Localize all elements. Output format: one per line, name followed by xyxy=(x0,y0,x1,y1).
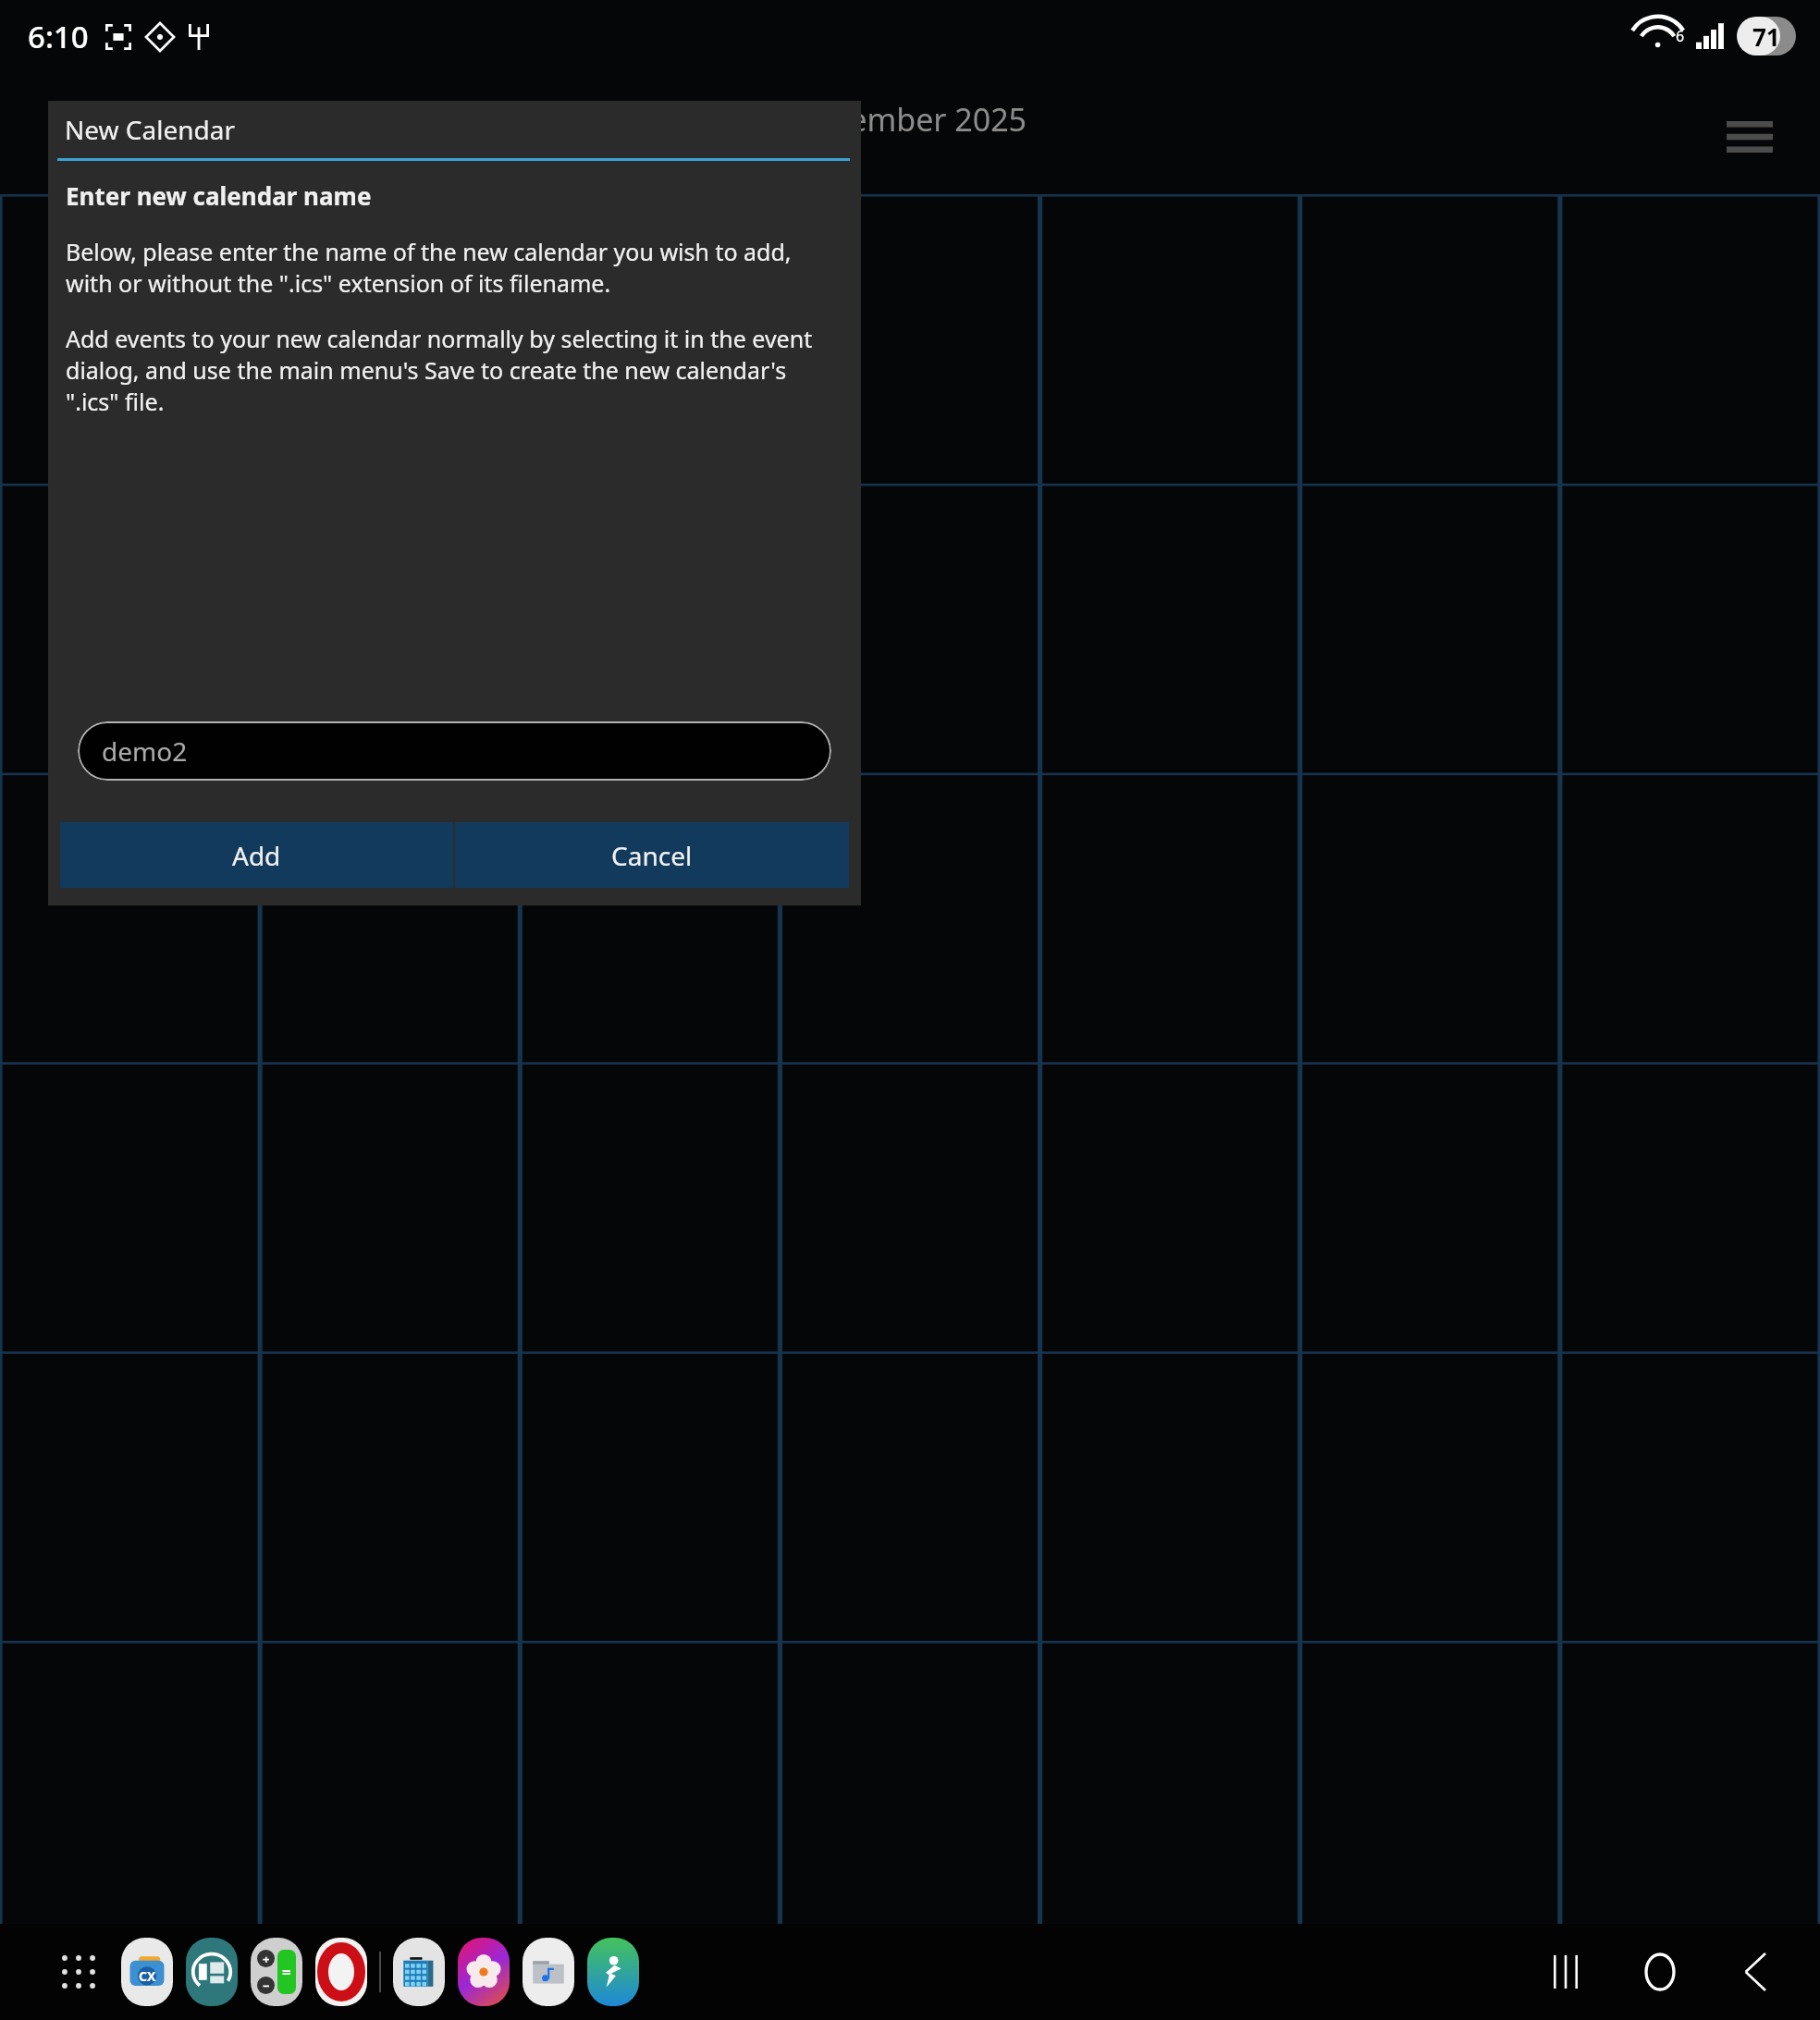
button[interactable]: Calendar xyxy=(390,1937,448,2007)
staticText: Add events to your new calendar normally… xyxy=(66,323,843,417)
button[interactable]: Cancel xyxy=(455,822,849,888)
staticText: − xyxy=(263,1977,270,1994)
staticText: Enter new calendar name xyxy=(66,179,372,212)
staticText: 6 xyxy=(1676,26,1685,46)
button[interactable]: Apps xyxy=(52,1945,105,1999)
button[interactable]: CX File Explorer xyxy=(118,1937,176,2007)
button[interactable]: Menu xyxy=(1716,107,1783,166)
staticText: demo2 xyxy=(102,733,188,769)
button[interactable]: Recents xyxy=(1524,1930,1607,2014)
button[interactable]: Add xyxy=(60,822,453,888)
button[interactable]: Gallery xyxy=(455,1937,512,2007)
staticText: + xyxy=(263,1951,270,1967)
button[interactable]: Opera xyxy=(313,1937,370,2007)
staticText: 6:10 xyxy=(28,16,89,57)
staticText: December 2025 xyxy=(793,98,1027,141)
staticText: CX xyxy=(139,1967,156,1985)
staticText: = xyxy=(282,1962,291,1983)
staticText: New Calendar xyxy=(65,112,236,147)
staticText: Add xyxy=(232,838,281,873)
button[interactable]: demo2 xyxy=(78,721,831,781)
staticText: Below, please enter the name of the new … xyxy=(66,236,843,299)
button[interactable]: Calculator xyxy=(248,1937,305,2007)
button[interactable]: Music xyxy=(520,1937,577,2007)
staticText: Cancel xyxy=(611,838,693,873)
button[interactable]: Sync xyxy=(183,1937,240,2007)
button[interactable]: Home xyxy=(1618,1930,1702,2014)
button[interactable]: Back xyxy=(1713,1930,1796,2014)
staticText: 71 xyxy=(1752,20,1780,53)
button[interactable]: Health xyxy=(584,1937,642,2007)
